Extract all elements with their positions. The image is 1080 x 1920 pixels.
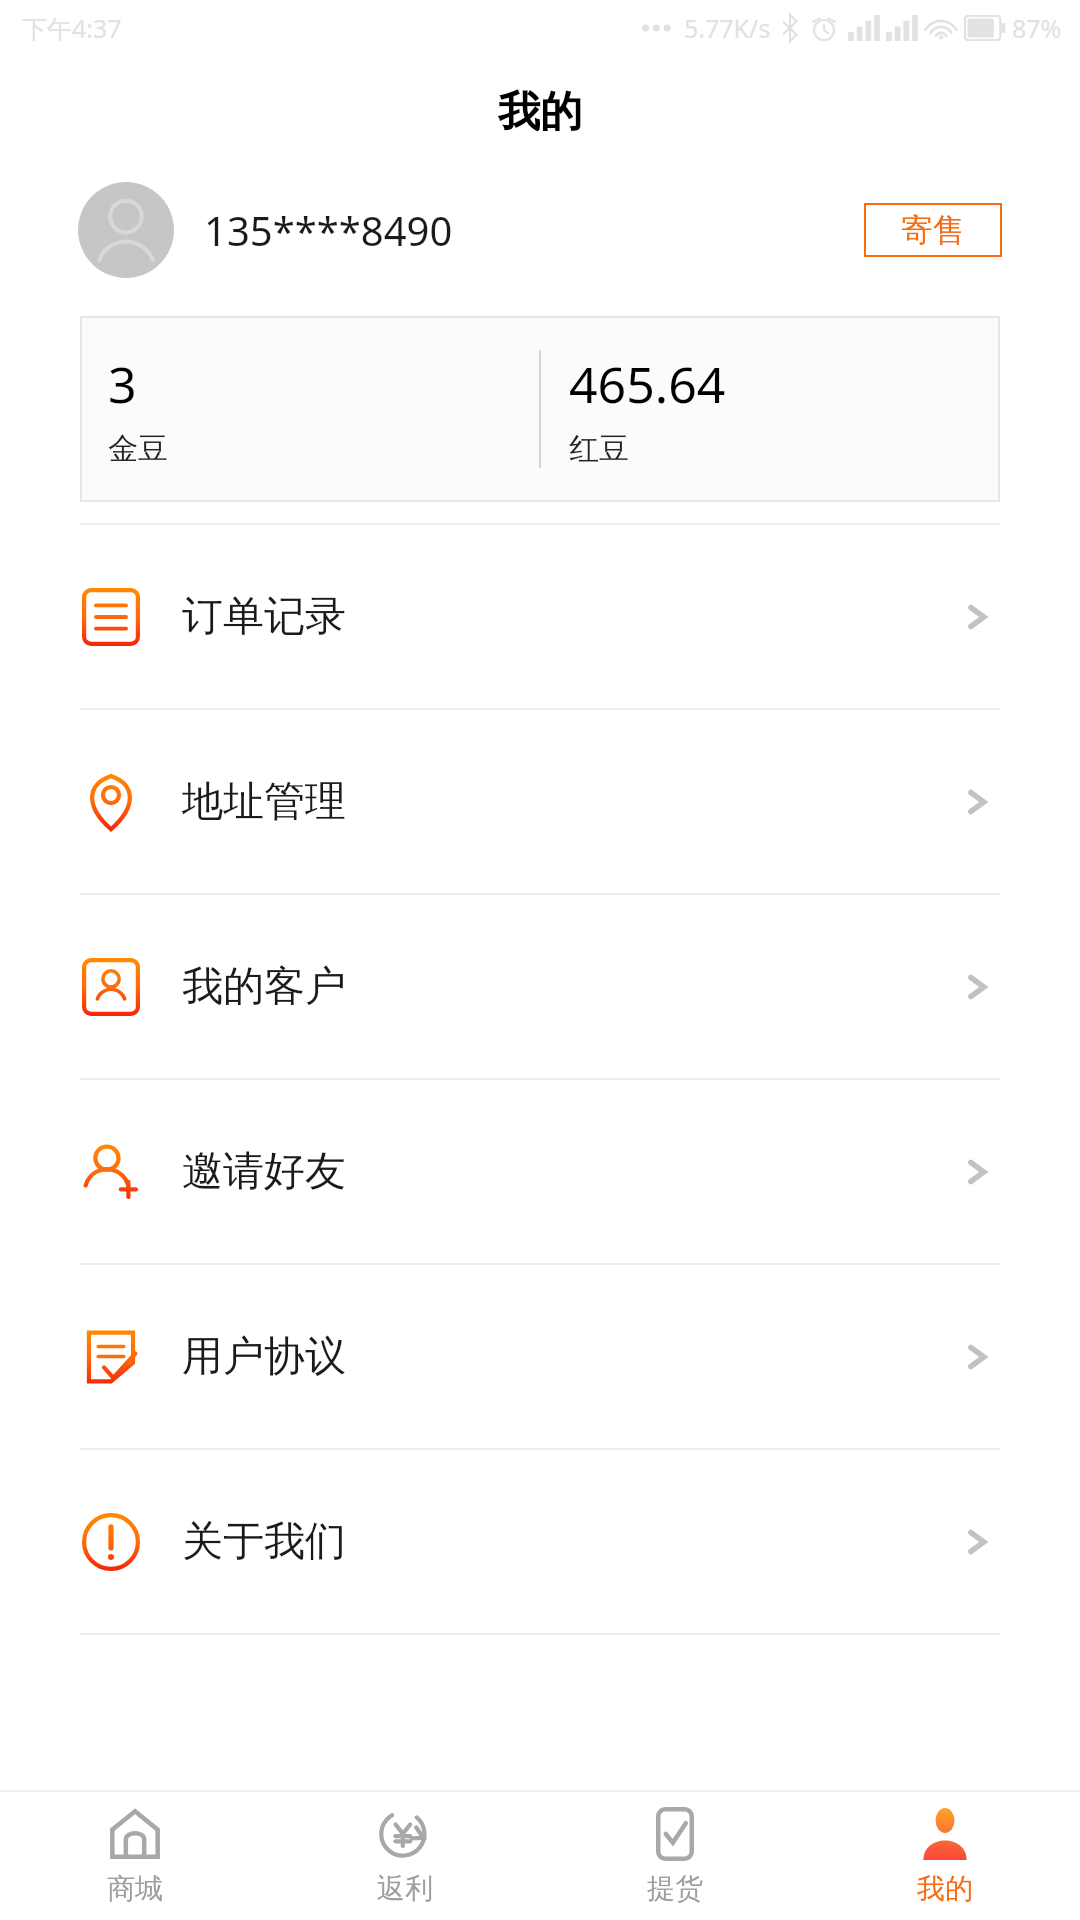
staticText: 5.77K/s — [684, 11, 771, 45]
button[interactable]: 关于我们 — [0, 1450, 1080, 1633]
staticText: 下午4:37 — [22, 11, 122, 45]
button[interactable]: 465.64 — [541, 316, 1000, 502]
staticText: 465.64 — [569, 350, 726, 418]
button[interactable]: 我的 — [810, 1792, 1080, 1920]
staticText: 订单记录 — [182, 591, 346, 643]
staticText: 我的 — [498, 86, 582, 139]
staticText: 关于我们 — [182, 1516, 346, 1568]
button[interactable]: 头像 — [78, 182, 174, 278]
button[interactable]: 寄售 — [864, 203, 1002, 257]
staticText: 地址管理 — [182, 776, 346, 828]
staticText: 我的客户 — [182, 961, 346, 1013]
button[interactable]: 订单记录 — [0, 525, 1080, 708]
button[interactable]: 我的客户 — [0, 895, 1080, 1078]
button[interactable]: 返利 — [270, 1792, 540, 1920]
staticText: 寄售 — [901, 210, 965, 250]
staticText: 135****8490 — [204, 203, 453, 257]
staticText: 我的 — [917, 1871, 973, 1906]
button[interactable]: 用户协议 — [0, 1265, 1080, 1448]
staticText: 3 — [108, 350, 137, 418]
staticText: 提货 — [647, 1871, 703, 1906]
staticText: 红豆 — [569, 430, 629, 468]
staticText: 返利 — [377, 1871, 433, 1906]
staticText: 邀请好友 — [182, 1146, 346, 1198]
button[interactable]: 邀请好友 — [0, 1080, 1080, 1263]
staticText: 87% — [1012, 11, 1062, 45]
button[interactable]: 地址管理 — [0, 710, 1080, 893]
staticText: 金豆 — [108, 430, 168, 468]
button[interactable]: 商城 — [0, 1792, 270, 1920]
button[interactable]: 3 — [80, 316, 539, 502]
staticText: 用户协议 — [182, 1331, 346, 1383]
button[interactable]: 提货 — [540, 1792, 810, 1920]
staticText: 商城 — [107, 1871, 163, 1906]
